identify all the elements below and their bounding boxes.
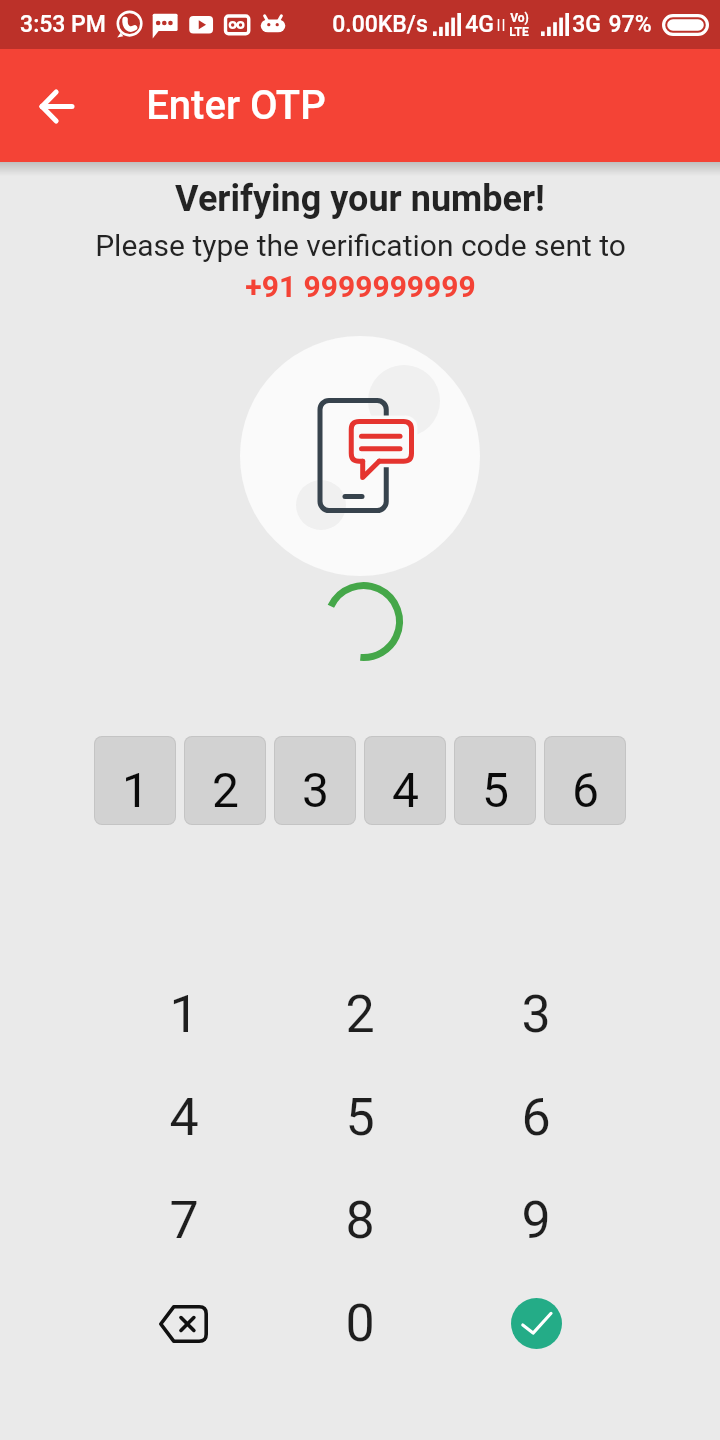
button[interactable]: 8 xyxy=(272,1169,448,1272)
staticText: 3 xyxy=(521,984,551,1045)
button[interactable]: Confirm xyxy=(448,1272,624,1375)
staticText: 0 xyxy=(345,1293,375,1354)
staticText: 97% xyxy=(608,11,652,38)
button[interactable]: 6 xyxy=(545,737,625,824)
staticText: 8 xyxy=(345,1190,375,1251)
staticText: LTE xyxy=(509,25,529,39)
staticText: Vo) xyxy=(510,11,529,25)
button[interactable]: Backspace xyxy=(96,1272,272,1375)
button[interactable]: 4 xyxy=(365,737,445,824)
staticText: 0.00KB/s xyxy=(332,11,428,38)
staticText: 7 xyxy=(169,1190,199,1251)
staticText: Verifying your number! xyxy=(175,178,545,220)
button[interactable]: 5 xyxy=(272,1066,448,1169)
staticText: 4 xyxy=(169,1087,199,1148)
button[interactable]: 2 xyxy=(272,963,448,1066)
button[interactable]: 3 xyxy=(275,737,355,824)
button[interactable]: Back xyxy=(16,66,96,146)
staticText: Enter OTP xyxy=(146,82,326,129)
staticText: +91 9999999999 xyxy=(245,269,476,304)
staticText: 6 xyxy=(521,1087,551,1148)
staticText: 4G xyxy=(465,11,494,38)
button[interactable]: 1 xyxy=(96,963,272,1066)
button[interactable]: 4 xyxy=(96,1066,272,1169)
staticText: 3 xyxy=(302,762,329,818)
button[interactable]: 6 xyxy=(448,1066,624,1169)
staticText: 2 xyxy=(212,762,239,818)
staticText: 5 xyxy=(345,1087,375,1148)
staticText: 9 xyxy=(521,1190,551,1251)
staticText: Please type the verification code sent t… xyxy=(95,228,626,263)
staticText: 1 xyxy=(169,984,199,1045)
staticText: 1 xyxy=(122,762,149,818)
staticText: 6 xyxy=(572,762,599,818)
button[interactable]: 1 xyxy=(95,737,175,824)
button[interactable]: 9 xyxy=(448,1169,624,1272)
button[interactable]: 5 xyxy=(455,737,535,824)
staticText: 4 xyxy=(392,762,419,818)
button[interactable]: 2 xyxy=(185,737,265,824)
staticText: 3G xyxy=(572,11,601,38)
staticText: 3:53 PM xyxy=(20,11,106,38)
button[interactable]: 7 xyxy=(96,1169,272,1272)
button[interactable]: 0 xyxy=(272,1272,448,1375)
staticText: 5 xyxy=(482,762,509,818)
button[interactable]: 3 xyxy=(448,963,624,1066)
staticText: 2 xyxy=(345,984,375,1045)
